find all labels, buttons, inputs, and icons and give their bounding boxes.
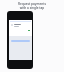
- staticText: Request payments with a single tap: [17, 2, 47, 10]
